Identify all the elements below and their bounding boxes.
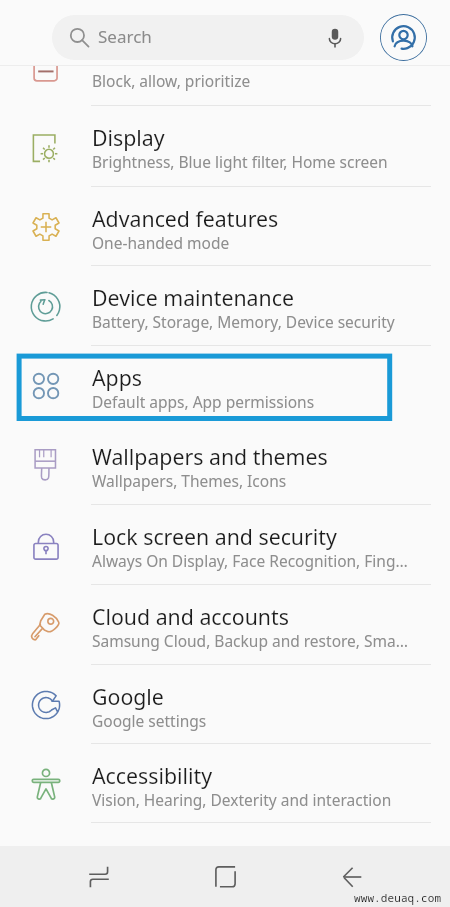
button[interactable]: Back bbox=[289, 846, 416, 907]
staticText: Block, allow, prioritize bbox=[92, 70, 251, 91]
staticText: Advanced features bbox=[92, 204, 279, 233]
button[interactable]: Account bbox=[380, 14, 427, 61]
button[interactable]: Cloud and accounts bbox=[0, 585, 450, 665]
button[interactable]: Apps bbox=[0, 346, 450, 425]
staticText: Battery, Storage, Memory, Device securit… bbox=[92, 311, 395, 332]
staticText: Device maintenance bbox=[92, 283, 294, 312]
staticText: Language and input, Date and time, Reset bbox=[92, 868, 399, 889]
staticText: Cloud and accounts bbox=[92, 602, 289, 631]
button[interactable]: Google bbox=[0, 665, 450, 744]
button[interactable]: Home bbox=[162, 846, 289, 907]
staticText: Lock screen and security bbox=[92, 522, 337, 551]
staticText: www.deuaq.com bbox=[354, 890, 442, 905]
button[interactable]: Lock screen and security bbox=[0, 505, 450, 585]
staticText: Default apps, App permissions bbox=[92, 391, 315, 412]
button[interactable]: Advanced features bbox=[0, 187, 450, 266]
staticText: Wallpapers and themes bbox=[92, 442, 328, 471]
button[interactable]: Wallpapers and themes bbox=[0, 425, 450, 505]
button[interactable]: Search bbox=[52, 15, 364, 60]
staticText: Google settings bbox=[92, 710, 207, 731]
staticText: Apps bbox=[92, 363, 143, 392]
button[interactable]: Device maintenance bbox=[0, 266, 450, 346]
button[interactable]: Accessibility bbox=[0, 744, 450, 823]
button[interactable]: Display bbox=[0, 106, 450, 187]
staticText: One-handed mode bbox=[92, 232, 230, 253]
staticText: Brightness, Blue light filter, Home scre… bbox=[92, 151, 388, 172]
staticText: Accessibility bbox=[92, 761, 213, 790]
staticText: Google bbox=[92, 682, 164, 711]
staticText: Always On Display, Face Recognition, Fin… bbox=[92, 550, 408, 571]
staticText: Display bbox=[92, 123, 165, 152]
staticText: Search bbox=[98, 25, 152, 48]
button[interactable]: Recent apps bbox=[35, 846, 162, 907]
staticText: Vision, Hearing, Dexterity and interacti… bbox=[92, 789, 392, 810]
button[interactable]: General management bbox=[0, 823, 450, 903]
staticText: General management bbox=[92, 840, 311, 869]
staticText: Wallpapers, Themes, Icons bbox=[92, 470, 287, 491]
staticText: Samsung Cloud, Backup and restore, Sma… bbox=[92, 630, 408, 651]
